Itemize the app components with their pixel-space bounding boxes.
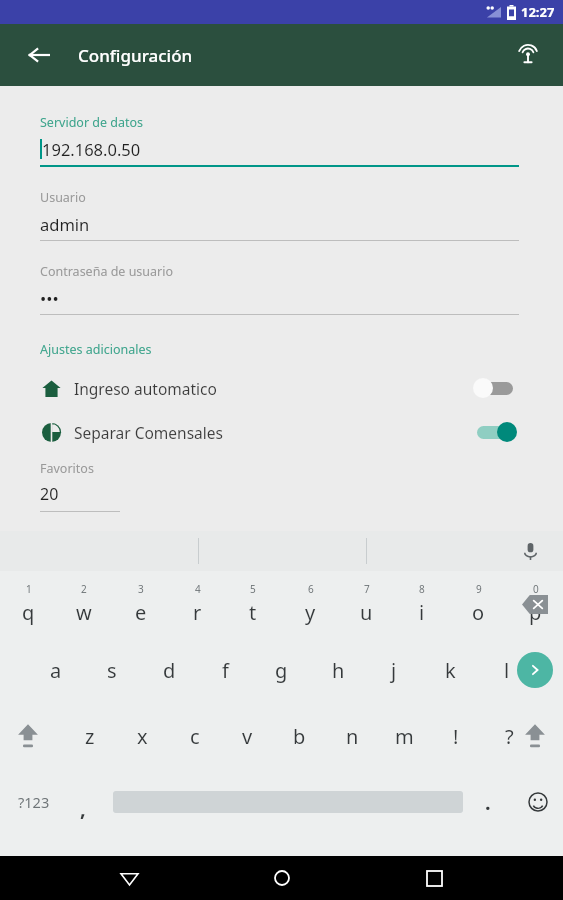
staticText: n xyxy=(346,723,359,750)
button[interactable]: Usuario xyxy=(40,189,519,241)
button[interactable]: , xyxy=(62,769,104,835)
staticText: o xyxy=(472,599,485,626)
button[interactable]: Recents xyxy=(410,856,458,900)
button[interactable]: s xyxy=(84,637,140,703)
button[interactable]: k xyxy=(422,637,478,703)
staticText: Ingreso automatico xyxy=(74,378,217,399)
button[interactable]: Emoji xyxy=(513,769,563,835)
button[interactable]: j xyxy=(366,637,422,703)
staticText: Separar Comensales xyxy=(74,422,223,443)
staticText: , xyxy=(80,795,86,822)
staticText: u xyxy=(360,599,373,626)
staticText: 3 xyxy=(138,582,144,596)
staticText: Servidor de datos xyxy=(40,114,144,131)
staticText: 20 xyxy=(40,483,59,505)
staticText: e xyxy=(135,599,147,626)
button[interactable]: 4 xyxy=(169,571,225,637)
button[interactable]: Connection xyxy=(507,34,549,76)
button[interactable]: l xyxy=(479,637,535,703)
button[interactable]: Servidor de datos xyxy=(40,114,519,167)
staticText: ! xyxy=(453,723,459,750)
staticText: admin xyxy=(40,213,90,235)
staticText: 2 xyxy=(81,582,87,596)
button[interactable]: 7 xyxy=(338,571,394,637)
staticText: ••• xyxy=(40,287,59,309)
staticText: ? xyxy=(505,723,514,750)
staticText: m xyxy=(395,723,414,750)
button[interactable]: ! xyxy=(428,703,484,769)
button[interactable]: h xyxy=(310,637,366,703)
staticText: a xyxy=(50,657,62,684)
staticText: t xyxy=(249,599,257,626)
button[interactable]: Home xyxy=(258,856,306,900)
button[interactable]: 5 xyxy=(225,571,281,637)
staticText: g xyxy=(275,657,288,684)
staticText: p xyxy=(529,599,542,626)
staticText: Usuario xyxy=(40,189,86,206)
staticText: 12:27 xyxy=(521,3,555,21)
button[interactable]: ? xyxy=(481,703,537,769)
button[interactable]: 3 xyxy=(113,571,169,637)
button[interactable]: 6 xyxy=(282,571,338,637)
staticText: y xyxy=(305,599,316,626)
staticText: 1 xyxy=(26,582,32,596)
staticText: Contraseña de usuario xyxy=(40,263,174,280)
button[interactable]: Back xyxy=(20,36,58,74)
staticText: Favoritos xyxy=(40,460,94,477)
staticText: d xyxy=(163,657,176,684)
staticText: s xyxy=(107,657,117,684)
staticText: i xyxy=(419,599,425,626)
staticText: 5 xyxy=(250,582,256,596)
button[interactable]: f xyxy=(197,637,253,703)
staticText: q xyxy=(22,599,35,626)
button[interactable]: x xyxy=(114,703,170,769)
staticText: h xyxy=(332,657,345,684)
staticText: b xyxy=(293,723,306,750)
staticText: r xyxy=(193,599,202,626)
staticText: 192.168.0.50 xyxy=(42,138,141,160)
button[interactable]: . xyxy=(468,769,508,835)
button[interactable]: Contraseña de usuario xyxy=(40,263,519,315)
staticText: z xyxy=(85,723,95,750)
button[interactable]: c xyxy=(167,703,223,769)
button[interactable]: 0 xyxy=(507,571,563,637)
button[interactable]: 9 xyxy=(450,571,506,637)
button[interactable]: Shift xyxy=(507,703,563,769)
button[interactable]: Back xyxy=(105,856,153,900)
button[interactable]: ?123 xyxy=(0,769,68,835)
button[interactable]: Shift xyxy=(0,703,56,769)
staticText: 8 xyxy=(419,582,425,596)
button[interactable]: Separar Comensales xyxy=(40,410,519,454)
staticText: ?123 xyxy=(18,792,50,812)
staticText: Ajustes adicionales xyxy=(40,341,152,358)
staticText: v xyxy=(242,723,253,750)
staticText: x xyxy=(137,723,148,750)
staticText: 7 xyxy=(364,582,370,596)
button[interactable]: 8 xyxy=(394,571,450,637)
staticText: c xyxy=(190,723,200,750)
button[interactable]: g xyxy=(253,637,309,703)
button[interactable]: v xyxy=(219,703,275,769)
staticText: Configuración xyxy=(78,44,193,67)
staticText: l xyxy=(504,657,510,684)
button[interactable]: Backspace xyxy=(507,571,563,637)
staticText: . xyxy=(485,789,491,816)
button[interactable]: Ingreso automatico xyxy=(40,366,519,410)
button[interactable]: Voice input xyxy=(515,536,545,566)
staticText: k xyxy=(445,657,456,684)
button[interactable]: d xyxy=(141,637,197,703)
staticText: 0 xyxy=(533,582,539,596)
button[interactable]: Space xyxy=(113,769,463,835)
button[interactable]: n xyxy=(324,703,380,769)
button[interactable]: b xyxy=(271,703,327,769)
button[interactable]: z xyxy=(62,703,118,769)
staticText: w xyxy=(76,599,92,626)
staticText: 6 xyxy=(308,582,314,596)
button[interactable]: 1 xyxy=(0,571,56,637)
button[interactable]: m xyxy=(376,703,432,769)
staticText: f xyxy=(222,657,229,684)
button[interactable]: 2 xyxy=(56,571,112,637)
button[interactable]: Enter xyxy=(507,637,563,703)
staticText: j xyxy=(391,657,397,684)
button[interactable]: a xyxy=(28,637,84,703)
